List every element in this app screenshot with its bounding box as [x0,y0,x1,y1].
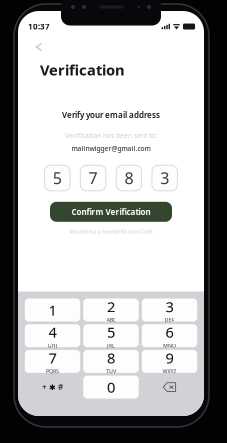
staticText: 10:37 [28,21,50,32]
staticText: JKL [107,342,115,349]
staticText: 0 [107,377,115,397]
staticText: 8 [107,348,115,368]
button[interactable]: 7 [25,350,80,373]
button[interactable]: Symbols [25,376,80,399]
staticText: Confirm Verification [71,206,150,217]
staticText: TUV [106,368,116,375]
staticText: ABC [106,316,115,323]
staticText: MNO [163,342,176,349]
button[interactable]: 5 [83,324,139,347]
button[interactable]: 4 [25,324,80,347]
staticText: 6 [165,322,173,342]
staticText: 7 [89,167,98,189]
staticText: 5 [107,322,115,342]
staticText: 4 [48,322,56,342]
staticText: Verification [40,60,125,79]
staticText: Resend me a new Verification Code [69,228,152,235]
staticText: Verify your email address [62,109,160,120]
staticText: malinwigger@gmail.com [71,144,150,153]
button[interactable]: 9 [142,350,197,373]
button[interactable]: 1 [25,298,80,321]
button[interactable]: 3 [142,298,197,321]
staticText: 7 [48,348,56,368]
button[interactable]: 0 [83,376,139,399]
staticText: PQRS [46,368,59,375]
staticText: Verification has been sent to: [65,131,157,140]
button[interactable]: 8 [83,350,139,373]
staticText: 2 [107,297,115,316]
staticText: 1 [48,300,56,320]
button[interactable]: Back [31,39,47,55]
button[interactable]: Delete [142,376,197,399]
staticText: GHI [47,342,57,349]
button[interactable]: 6 [142,324,197,347]
button[interactable]: Confirm Verification [50,202,172,222]
staticText: 3 [160,167,169,189]
staticText: + ✱ # [42,382,63,392]
staticText: WXYZ [162,368,176,375]
button[interactable]: 2 [83,298,139,321]
staticText: DEF [164,316,174,323]
staticText: 9 [165,348,173,368]
button[interactable]: Resend me a new Verification Code [69,228,152,235]
staticText: 5 [53,167,62,189]
staticText: 3 [165,297,173,316]
staticText: 8 [124,167,133,189]
